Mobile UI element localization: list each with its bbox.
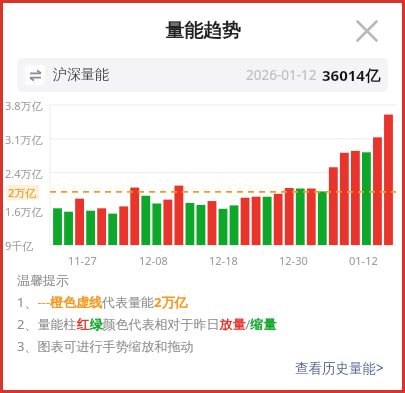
- staticText: 12-18: [209, 253, 238, 268]
- staticText: 2、量能柱红绿颜色代表相对于昨日放量/缩量: [17, 315, 277, 333]
- staticText: 36014亿: [322, 65, 380, 85]
- staticText: 3、图表可进行手势缩放和拖动: [17, 337, 194, 355]
- staticText: 量能趋势: [165, 19, 241, 43]
- button[interactable]: 查看历史量能>: [291, 356, 388, 380]
- staticText: 3.8万亿: [5, 98, 49, 113]
- staticText: 1、---橙色虚线代表量能2万亿: [17, 293, 188, 311]
- staticText: 11-27: [68, 253, 97, 268]
- staticText: 2026-01-12: [246, 66, 317, 84]
- button[interactable]: Close: [350, 14, 384, 48]
- staticText: 2.4万亿: [5, 166, 49, 181]
- staticText: 查看历史量能>: [295, 359, 384, 377]
- button[interactable]: 沪深量能: [17, 58, 388, 92]
- staticText: 温馨提示: [17, 272, 69, 288]
- staticText: 2万亿: [8, 185, 37, 200]
- staticText: 01-12: [349, 253, 378, 268]
- staticText: 12-08: [139, 253, 168, 268]
- staticText: 沪深量能: [53, 66, 109, 84]
- staticText: 1.6万亿: [5, 204, 49, 219]
- staticText: 3.1万亿: [5, 132, 49, 147]
- staticText: 12-30: [279, 253, 308, 268]
- staticText: 9千亿: [5, 238, 49, 253]
